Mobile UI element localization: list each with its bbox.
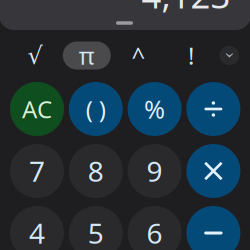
button[interactable]: ( ): [69, 82, 123, 136]
button[interactable]: AC: [10, 82, 64, 136]
staticText: 8: [88, 152, 104, 190]
button[interactable]: %: [128, 82, 182, 136]
button[interactable]: Multiply: [186, 144, 240, 198]
staticText: 6: [147, 214, 163, 250]
button[interactable]: ^: [117, 41, 161, 69]
button[interactable]: !: [169, 41, 213, 69]
button[interactable]: √: [13, 41, 57, 69]
button[interactable]: 4: [10, 206, 64, 250]
button[interactable]: 7: [10, 144, 64, 198]
staticText: 7: [29, 152, 45, 190]
staticText: π: [79, 40, 95, 71]
staticText: √: [27, 42, 42, 69]
staticText: 4: [29, 214, 45, 250]
button[interactable]: 5: [69, 206, 123, 250]
staticText: 5: [88, 214, 104, 250]
button[interactable]: Divide: [186, 82, 240, 136]
staticText: 4,123: [141, 0, 230, 18]
button[interactable]: 8: [69, 144, 123, 198]
staticText: ( ): [86, 93, 106, 125]
button[interactable]: More functions: [220, 46, 239, 65]
staticText: 9: [147, 152, 163, 190]
staticText: ^: [132, 40, 146, 71]
staticText: !: [188, 40, 194, 71]
staticText: AC: [22, 93, 52, 125]
button[interactable]: 6: [128, 206, 182, 250]
button[interactable]: 9: [128, 144, 182, 198]
button[interactable]: π: [63, 41, 111, 69]
staticText: %: [144, 92, 165, 126]
button[interactable]: Subtract: [186, 206, 240, 250]
